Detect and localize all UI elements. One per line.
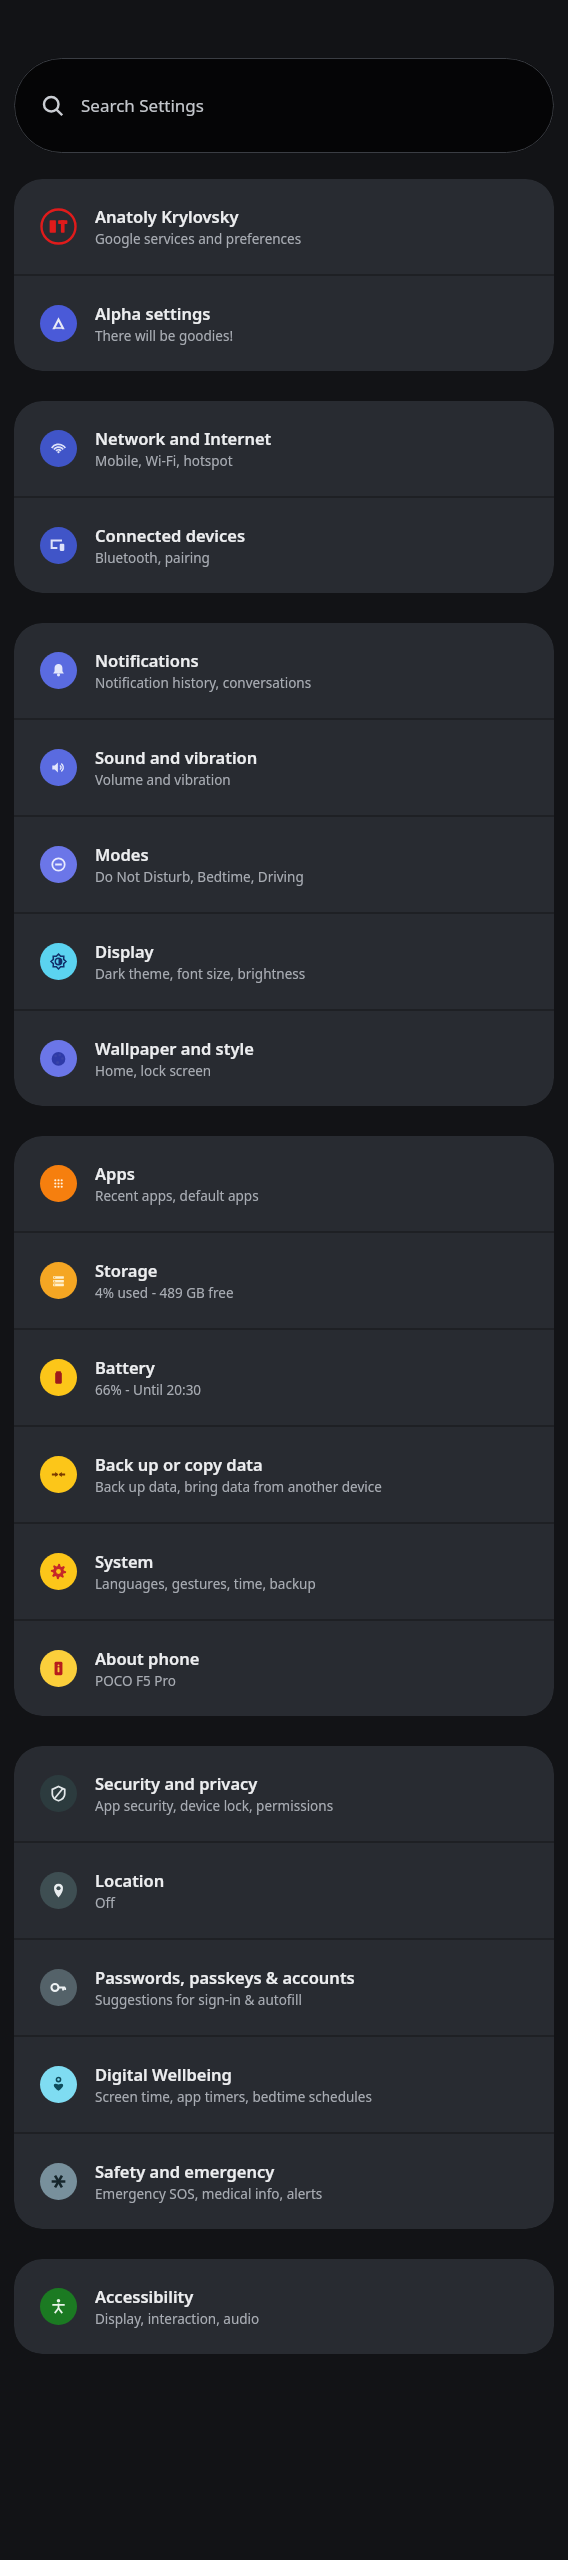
button[interactable]: Display (14, 914, 554, 1009)
staticText: Safety and emergency (95, 2160, 275, 2182)
staticText: Notifications (95, 649, 199, 671)
staticText: Connected devices (95, 524, 246, 546)
staticText: Apps (95, 1162, 135, 1184)
button[interactable]: Notifications (14, 623, 554, 718)
staticText: Back up or copy data (95, 1453, 263, 1475)
staticText: Security and privacy (95, 1772, 258, 1794)
button[interactable]: Connected devices (14, 498, 554, 593)
staticText: Emergency SOS, medical info, alerts (95, 2185, 323, 2203)
button[interactable]: Anatoly Krylovsky (14, 179, 554, 274)
staticText: About phone (95, 1647, 200, 1669)
staticText: There will be goodies! (95, 327, 234, 345)
button[interactable]: System (14, 1524, 554, 1619)
staticText: Languages, gestures, time, backup (95, 1575, 316, 1593)
button[interactable]: Battery (14, 1330, 554, 1425)
staticText: Screen time, app timers, bedtime schedul… (95, 2088, 372, 2106)
staticText: Display, interaction, audio (95, 2310, 260, 2328)
staticText: Accessibility (95, 2285, 194, 2307)
button[interactable]: About phone (14, 1621, 554, 1716)
button[interactable]: Storage (14, 1233, 554, 1328)
staticText: 4% used - 489 GB free (95, 1284, 234, 1302)
button[interactable]: Wallpaper and style (14, 1011, 554, 1106)
staticText: Off (95, 1894, 115, 1912)
staticText: Mobile, Wi-Fi, hotspot (95, 452, 233, 470)
staticText: POCO F5 Pro (95, 1672, 176, 1690)
button[interactable]: Apps (14, 1136, 554, 1231)
button[interactable]: Digital Wellbeing (14, 2037, 554, 2132)
staticText: Storage (95, 1259, 158, 1281)
staticText: Home, lock screen (95, 1062, 212, 1080)
staticText: Back up data, bring data from another de… (95, 1478, 382, 1496)
button[interactable]: Sound and vibration (14, 720, 554, 815)
staticText: Location (95, 1869, 165, 1891)
staticText: Google services and preferences (95, 230, 302, 248)
staticText: Suggestions for sign-in & autofill (95, 1991, 302, 2009)
staticText: Search Settings (81, 94, 204, 117)
button[interactable]: Security and privacy (14, 1746, 554, 1841)
staticText: 66% - Until 20:30 (95, 1381, 202, 1399)
staticText: Wallpaper and style (95, 1037, 254, 1059)
staticText: Anatoly Krylovsky (95, 205, 239, 227)
button[interactable]: Back up or copy data (14, 1427, 554, 1522)
staticText: Battery (95, 1356, 155, 1378)
button[interactable]: Alpha settings (14, 276, 554, 371)
staticText: Recent apps, default apps (95, 1187, 259, 1205)
button[interactable]: Search Settings (14, 58, 554, 153)
staticText: Do Not Disturb, Bedtime, Driving (95, 868, 304, 886)
button[interactable]: Passwords, passkeys & accounts (14, 1940, 554, 2035)
button[interactable]: Location (14, 1843, 554, 1938)
staticText: Alpha settings (95, 302, 211, 324)
staticText: Dark theme, font size, brightness (95, 965, 306, 983)
staticText: Modes (95, 843, 149, 865)
staticText: App security, device lock, permissions (95, 1797, 334, 1815)
staticText: Digital Wellbeing (95, 2063, 232, 2085)
staticText: System (95, 1550, 154, 1572)
button[interactable]: Accessibility (14, 2259, 554, 2354)
staticText: Bluetooth, pairing (95, 549, 210, 567)
staticText: Display (95, 940, 154, 962)
button[interactable]: Safety and emergency (14, 2134, 554, 2229)
staticText: Network and Internet (95, 427, 272, 449)
staticText: Volume and vibration (95, 771, 231, 789)
button[interactable]: Modes (14, 817, 554, 912)
button[interactable]: Network and Internet (14, 401, 554, 496)
staticText: Sound and vibration (95, 746, 258, 768)
staticText: Notification history, conversations (95, 674, 312, 692)
staticText: Passwords, passkeys & accounts (95, 1966, 355, 1988)
